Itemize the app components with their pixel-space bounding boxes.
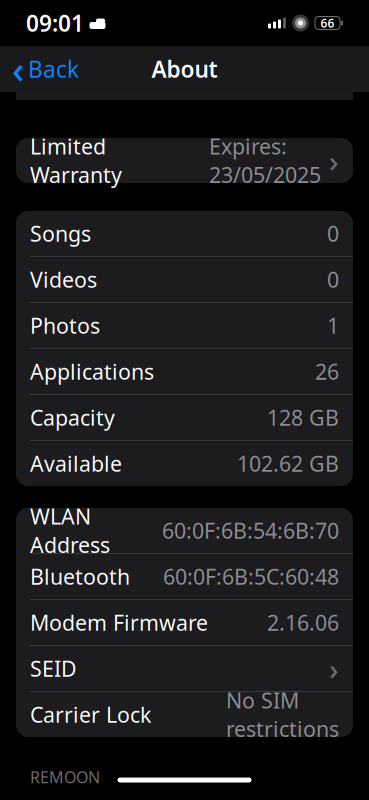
staticText: 2.16.06 [267,608,339,637]
button[interactable]: Applications [16,349,353,394]
staticText: 128 GB [267,403,339,432]
staticText: 0 [327,265,339,294]
staticText: REMOON [30,766,100,788]
staticText: Capacity [30,403,115,432]
button[interactable]: Limited Warranty [16,138,353,183]
button[interactable]: Bluetooth [16,554,353,599]
staticText: Bluetooth [30,562,130,591]
staticText: ‹ [12,44,24,94]
button[interactable]: Available [16,441,353,486]
staticText: No SIM restrictions [226,686,339,743]
staticText: SEID [30,654,77,683]
staticText: Expires: 23/05/2025 [209,132,321,189]
staticText: › [329,649,339,688]
staticText: About [151,54,217,84]
staticText: 26 [315,357,339,386]
staticText: Available [30,449,122,478]
button[interactable]: Videos [16,257,353,302]
button[interactable]: SEID [16,646,353,691]
staticText: Modem Firmware [30,608,208,637]
staticText: Photos [30,311,100,340]
staticText: Videos [30,265,97,294]
button[interactable]: Photos [16,303,353,348]
staticText: Songs [30,219,91,248]
staticText: 1 [327,311,339,340]
staticText: 66 [320,15,334,31]
staticText: 102.62 GB [237,449,339,478]
staticText: 0 [327,219,339,248]
button[interactable]: WLAN Address [16,508,353,553]
staticText: Carrier Lock [30,700,151,729]
button[interactable]: Carrier Lock [16,692,353,737]
button[interactable]: Modem Firmware [16,600,353,645]
staticText: Applications [30,357,154,386]
staticText: 60:0F:6B:5C:60:48 [163,562,339,591]
staticText: 60:0F:6B:54:6B:70 [162,516,339,545]
staticText: Back [28,54,79,84]
button[interactable]: ‹ [2,47,89,91]
staticText: 09:01 [26,8,84,38]
staticText: Limited Warranty [30,132,122,189]
button[interactable]: Capacity [16,395,353,440]
staticText: › [329,141,339,180]
button[interactable]: Songs [16,211,353,256]
staticText: WLAN Address [30,502,110,559]
